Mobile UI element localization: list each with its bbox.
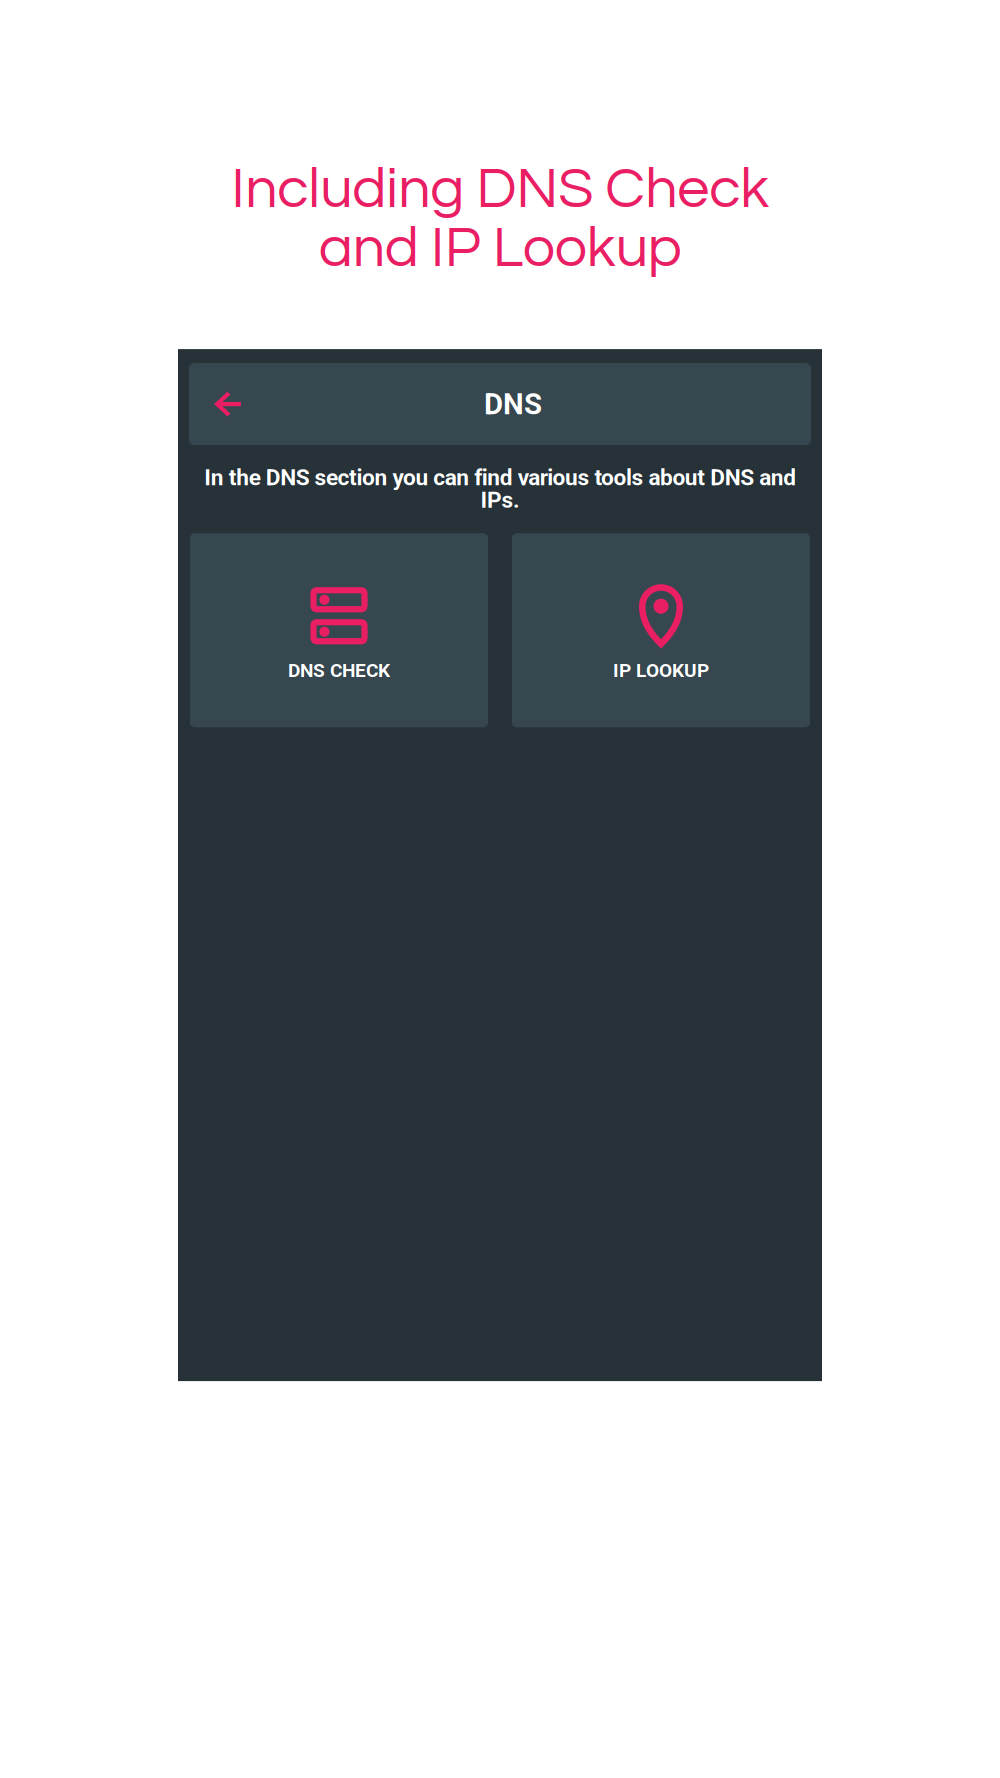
staticText: IP LOOKUP (613, 659, 709, 681)
button[interactable]: IP LOOKUP (512, 533, 810, 727)
button[interactable]: Back (189, 383, 250, 425)
staticText: Including DNS Check and IP Lookup (231, 160, 769, 278)
staticText: In the DNS section you can find various … (204, 464, 796, 513)
staticText: DNS (484, 387, 542, 421)
button[interactable]: DNS CHECK (190, 533, 488, 727)
staticText: DNS CHECK (288, 659, 390, 681)
